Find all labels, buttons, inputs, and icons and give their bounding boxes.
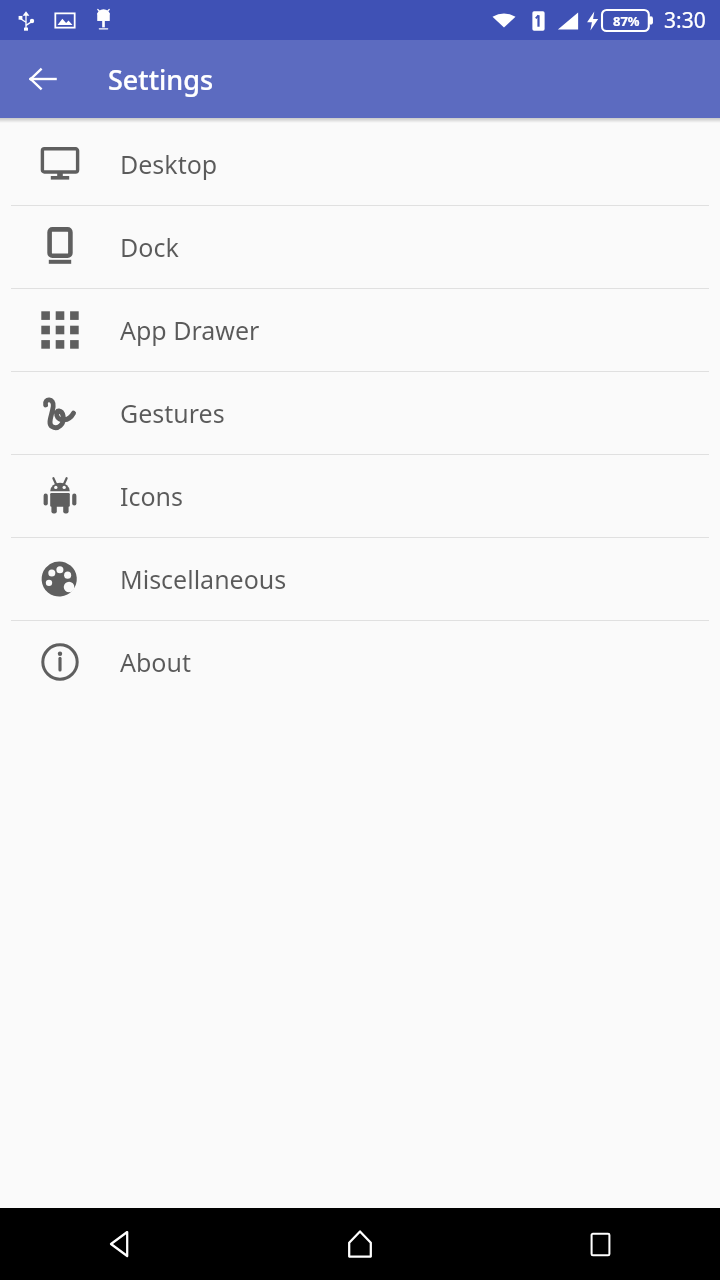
staticText: Gestures — [120, 396, 225, 430]
staticText: Miscellaneous — [120, 562, 287, 596]
button[interactable]: Icons — [0, 455, 720, 537]
button[interactable]: Gestures — [0, 372, 720, 454]
staticText: 87% — [613, 12, 640, 30]
staticText: Desktop — [120, 147, 218, 181]
button[interactable]: Miscellaneous — [0, 538, 720, 620]
staticText: About — [120, 645, 191, 679]
staticText: Icons — [120, 479, 184, 513]
button[interactable]: Back — [82, 1208, 158, 1280]
button[interactable]: Recents — [562, 1208, 638, 1280]
button[interactable]: Dock — [0, 206, 720, 288]
button[interactable]: Home — [322, 1208, 398, 1280]
button[interactable]: App Drawer — [0, 289, 720, 371]
button[interactable]: Back — [11, 47, 75, 111]
button[interactable]: Desktop — [0, 123, 720, 205]
staticText: Dock — [120, 230, 179, 264]
button[interactable]: About — [0, 621, 720, 703]
staticText: Settings — [108, 61, 214, 98]
staticText: 3:30 — [664, 6, 706, 35]
staticText: App Drawer — [120, 313, 260, 347]
